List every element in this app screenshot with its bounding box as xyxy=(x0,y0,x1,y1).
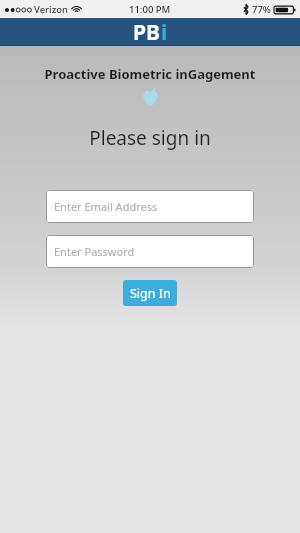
staticText: 77% xyxy=(252,3,271,16)
button[interactable]: Sign In xyxy=(123,280,177,306)
staticText: Sign In xyxy=(130,285,171,302)
staticText: Please sign in xyxy=(0,125,300,151)
button[interactable]: Enter Email Address xyxy=(46,190,254,223)
staticText: Enter Email Address xyxy=(54,199,158,214)
staticText: 11:00 PM xyxy=(129,3,171,16)
button[interactable]: Enter Password xyxy=(46,235,254,268)
staticText: i xyxy=(161,18,168,46)
staticText: Verizon xyxy=(34,3,68,16)
staticText: Enter Password xyxy=(54,244,135,259)
staticText: Proactive Biometric inGagement xyxy=(0,65,300,83)
staticText: PB xyxy=(133,18,161,46)
